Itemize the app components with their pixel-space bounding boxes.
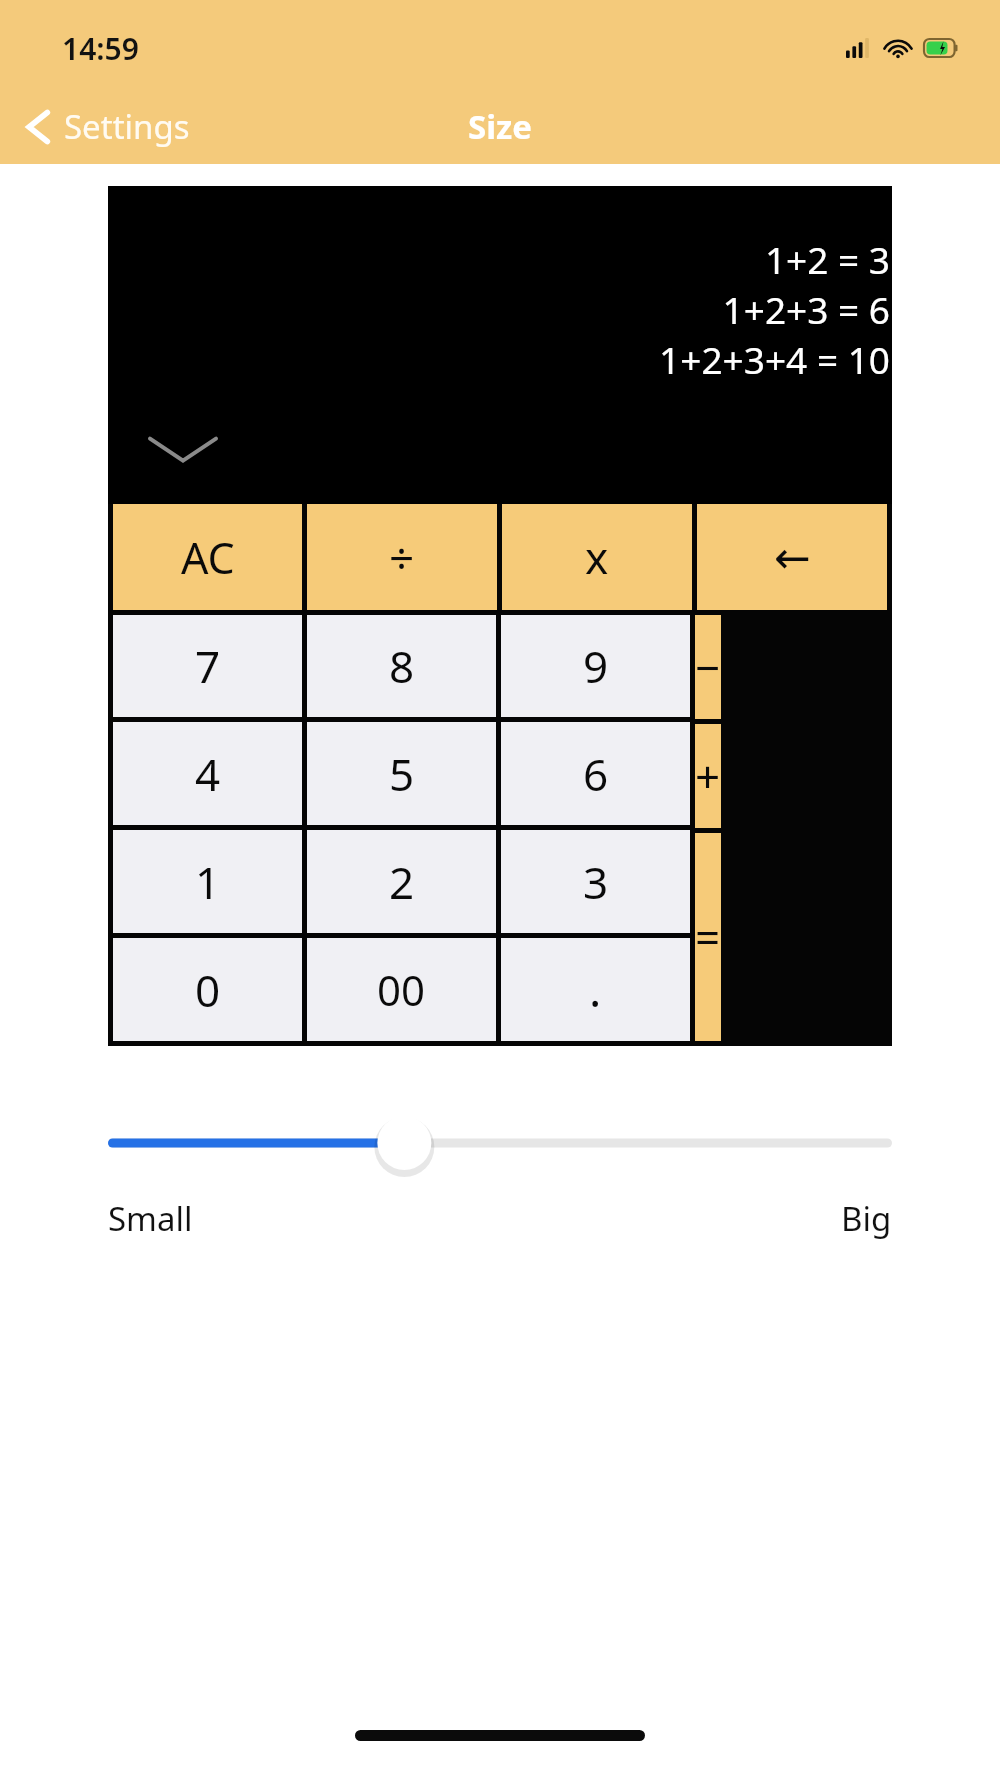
button[interactable]: 8 (307, 615, 496, 717)
button[interactable]: ÷ (307, 504, 497, 610)
staticText: 3 (583, 852, 609, 912)
staticText: ← (774, 532, 811, 583)
button[interactable]: 00 (307, 938, 496, 1041)
button[interactable]: 4 (113, 722, 302, 825)
button[interactable]: 7 (113, 615, 302, 717)
staticText: 1 (195, 852, 221, 912)
staticText: = (695, 907, 721, 967)
staticText: 14:59 (62, 28, 139, 69)
button[interactable]: Size slider (108, 1108, 892, 1178)
button[interactable]: x (502, 504, 692, 610)
other: Back (26, 108, 52, 146)
button[interactable]: − (695, 615, 721, 719)
button[interactable]: 9 (501, 615, 690, 717)
staticText: x (585, 527, 609, 587)
staticText: 7 (195, 636, 221, 696)
staticText: Settings (64, 104, 190, 149)
staticText: 6 (583, 744, 609, 804)
staticText: 4 (195, 744, 221, 804)
staticText: Size (468, 104, 533, 149)
staticText: 9 (583, 636, 609, 696)
staticText: 1+2 = 3 (764, 234, 890, 284)
other: Expand history (150, 436, 216, 462)
button[interactable]: 6 (501, 722, 690, 825)
button[interactable]: 5 (307, 722, 496, 825)
staticText: . (589, 958, 602, 1021)
staticText: 1+2+3 = 6 (722, 284, 890, 334)
staticText: 8 (389, 636, 415, 696)
button[interactable]: = (695, 833, 721, 1041)
staticText: Small (108, 1196, 193, 1241)
button[interactable]: Back (0, 98, 204, 155)
button[interactable]: ← (697, 504, 887, 610)
button[interactable]: . (501, 938, 690, 1041)
staticText: 0 (195, 960, 221, 1020)
button[interactable]: + (695, 724, 721, 828)
button[interactable]: 2 (307, 830, 496, 933)
button[interactable]: AC (113, 504, 302, 610)
staticText: ÷ (389, 527, 415, 587)
staticText: 00 (377, 961, 426, 1018)
staticText: − (695, 637, 721, 697)
staticText: + (695, 746, 721, 806)
button[interactable]: 3 (501, 830, 690, 933)
staticText: 1+2+3+4 = 10 (659, 334, 890, 384)
button[interactable]: 1 (113, 830, 302, 933)
staticText: Big (841, 1196, 892, 1241)
button[interactable]: 0 (113, 938, 302, 1041)
staticText: 2 (389, 852, 415, 912)
staticText: AC (181, 528, 235, 587)
staticText: 5 (389, 744, 415, 804)
